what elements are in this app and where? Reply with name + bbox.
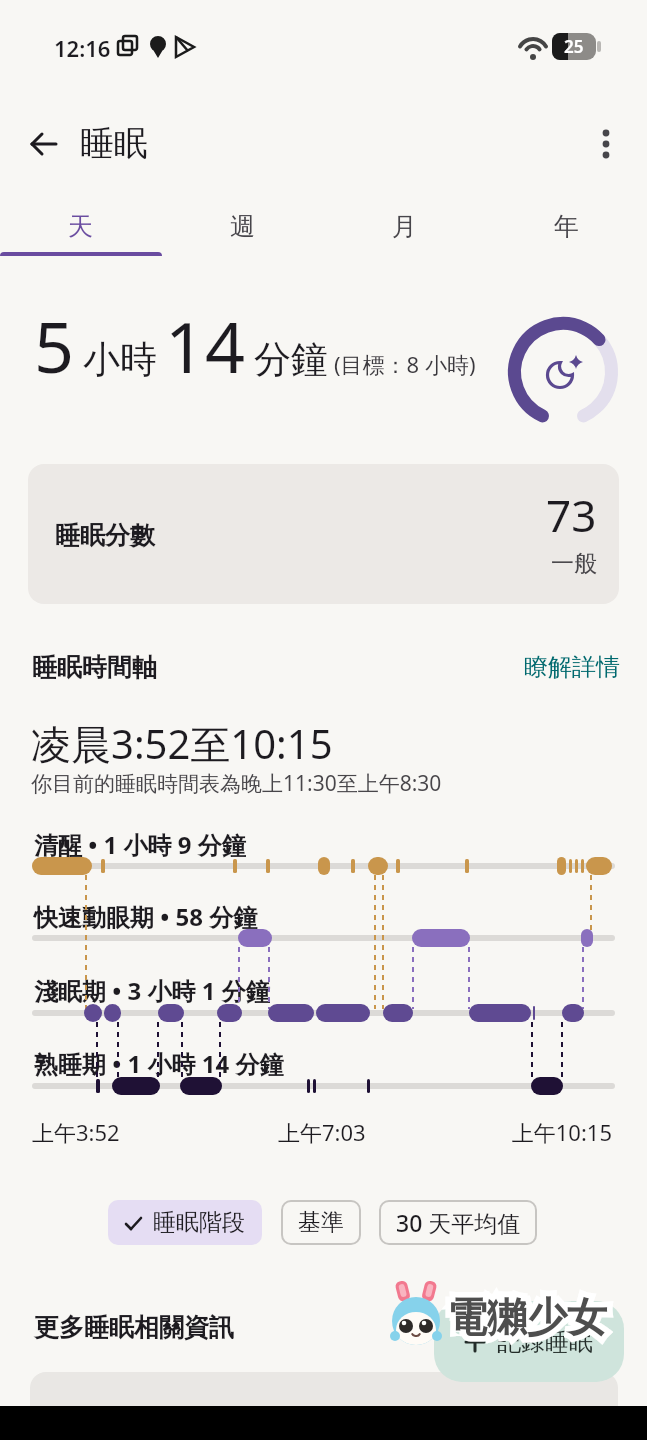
button[interactable]: 睡眠階段	[108, 1200, 262, 1245]
staticText: 睡眠時間軸	[32, 652, 157, 683]
staticText: 上午10:15	[511, 1117, 612, 1147]
staticText: 上午3:52	[32, 1117, 120, 1147]
staticText: 淺眠期 • 3 小時 1 分鐘	[34, 974, 270, 1007]
staticText: 週	[230, 211, 255, 242]
staticText: 熟睡期 • 1 小時 14 分鐘	[34, 1047, 284, 1080]
button[interactable]: 年	[485, 196, 647, 256]
button[interactable]: 天	[0, 196, 161, 256]
staticText: 小時	[83, 336, 157, 383]
button[interactable]	[28, 128, 60, 160]
staticText: 分鐘	[254, 336, 328, 383]
button[interactable]: 瞭解詳情	[520, 650, 624, 684]
button[interactable]: 30 天平均值	[379, 1200, 537, 1245]
staticText: 30 天平均值	[396, 1207, 521, 1238]
staticText: 天	[68, 211, 93, 242]
staticText: 73	[546, 485, 597, 545]
button[interactable]: 記錄睡眠	[434, 1301, 624, 1382]
staticText: 12:16	[54, 33, 111, 63]
staticText: 更多睡眠相關資訊	[34, 1312, 234, 1343]
staticText: 電獺少女	[447, 1292, 607, 1342]
button[interactable]: 週	[161, 196, 323, 256]
staticText: 25	[564, 35, 584, 58]
staticText: 記錄睡眠	[497, 1327, 593, 1357]
staticText: 睡眠分數	[55, 520, 155, 551]
staticText: 清醒 • 1 小時 9 分鐘	[34, 828, 246, 861]
button[interactable]	[596, 128, 616, 160]
staticText: 你目前的睡眠時間表為晚上11:30至上午8:30	[31, 769, 442, 798]
staticText: 電獺少女	[447, 1292, 607, 1342]
staticText: 年	[554, 211, 579, 242]
staticText: 基準	[298, 1208, 344, 1237]
staticText: 睡眠階段	[153, 1208, 245, 1237]
staticText: 月	[392, 211, 417, 242]
staticText: (目標：8 小時)	[334, 349, 476, 379]
staticText: 5	[34, 298, 75, 378]
staticText: 瞭解詳情	[524, 652, 620, 682]
staticText: 快速動眼期 • 58 分鐘	[34, 900, 258, 933]
button[interactable]: 月	[323, 196, 485, 256]
staticText: 凌晨3:52至10:15	[31, 716, 333, 771]
button[interactable]: 基準	[281, 1200, 361, 1245]
staticText: 睡眠	[80, 122, 148, 165]
staticText: 14	[165, 298, 246, 378]
staticText: 上午7:03	[278, 1117, 366, 1147]
button[interactable]: 睡眠分數	[28, 464, 619, 604]
staticText: 一般	[551, 549, 597, 578]
